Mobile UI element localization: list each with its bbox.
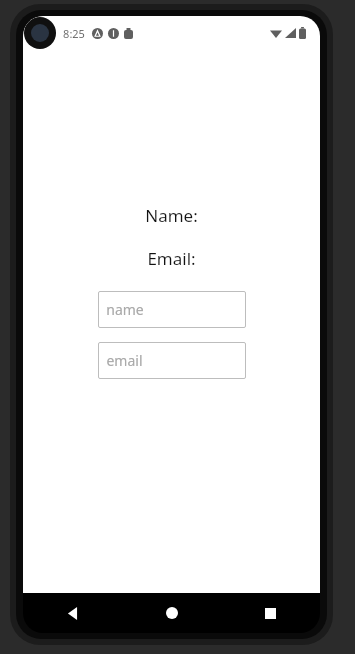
staticText: 8:25 (63, 26, 85, 41)
button[interactable]: email (98, 342, 246, 379)
button[interactable]: Home (122, 593, 221, 633)
button[interactable]: name (98, 291, 246, 328)
staticText: Name: (145, 204, 198, 227)
staticText: email (106, 351, 143, 370)
button[interactable]: Back (23, 593, 122, 633)
button[interactable]: Recent apps (221, 593, 320, 633)
staticText: name (106, 300, 144, 319)
staticText: Email: (147, 247, 196, 270)
